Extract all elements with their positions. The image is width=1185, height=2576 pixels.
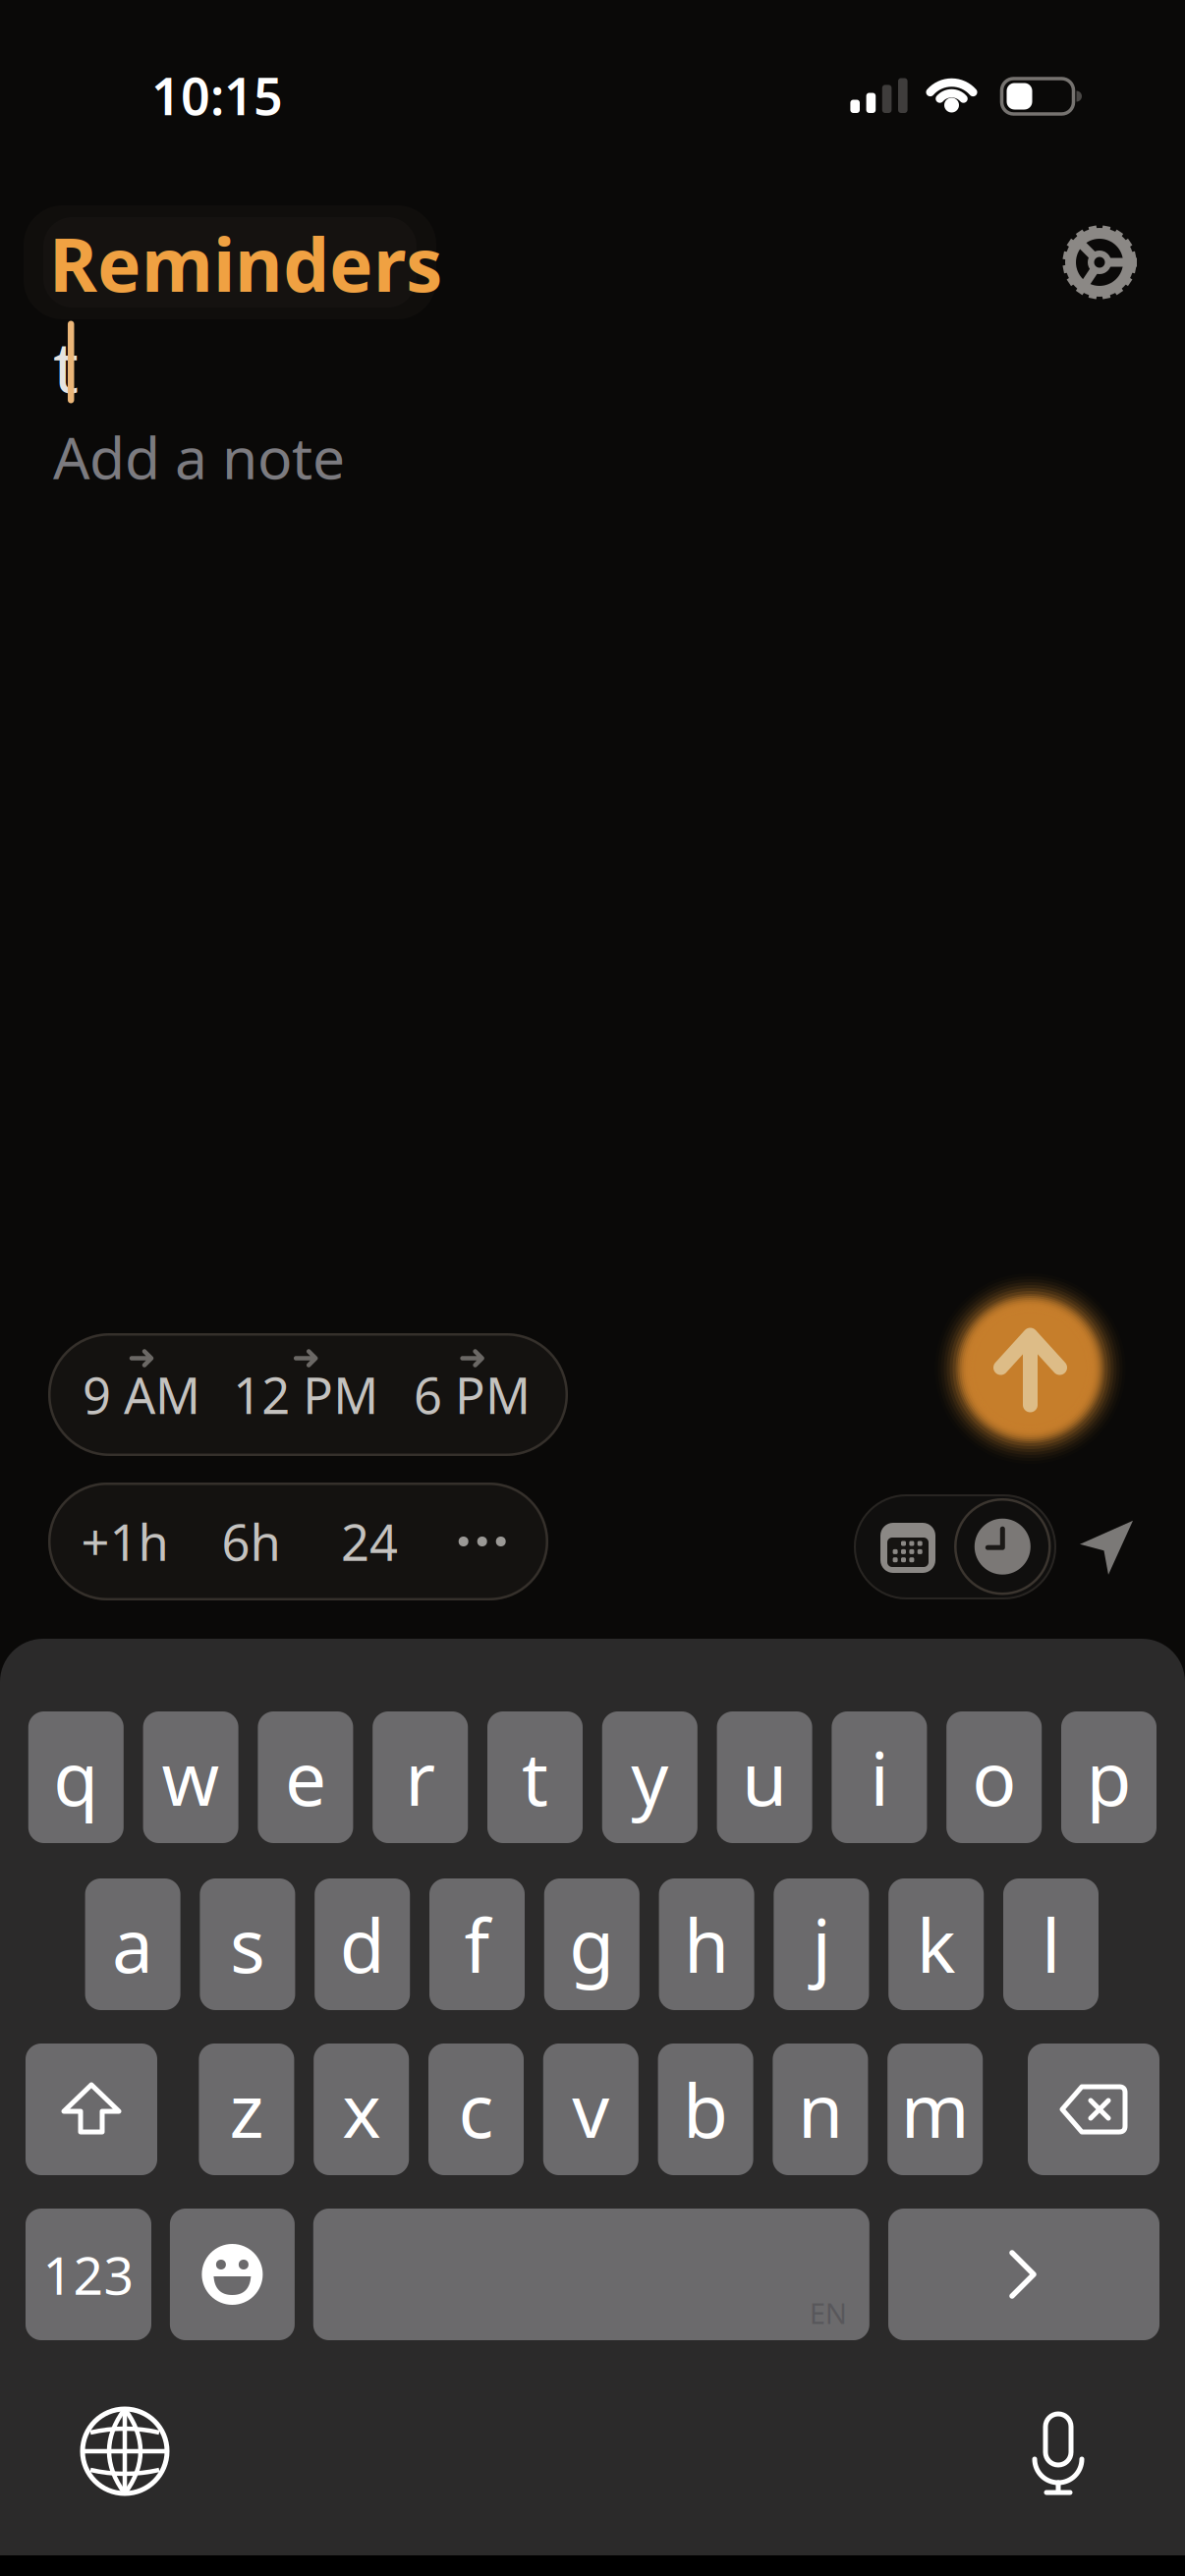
- button[interactable]: v: [543, 2044, 638, 2175]
- staticText: z: [229, 2061, 264, 2158]
- button[interactable]: 12 PM: [220, 1336, 392, 1448]
- staticText: t: [522, 1729, 548, 1826]
- staticText: 123: [43, 2240, 134, 2309]
- button[interactable]: t: [0, 321, 1185, 410]
- staticText: p: [1086, 1729, 1131, 1826]
- button[interactable]: p: [1061, 1711, 1157, 1843]
- staticText: t: [53, 319, 79, 412]
- staticText: r: [405, 1729, 435, 1826]
- button[interactable]: Delete: [1028, 2044, 1159, 2175]
- button[interactable]: m: [887, 2044, 983, 2175]
- staticText: 12 PM: [233, 1362, 378, 1428]
- staticText: e: [285, 1729, 326, 1826]
- staticText: m: [901, 2061, 970, 2158]
- button[interactable]: Emoji: [170, 2209, 295, 2340]
- button[interactable]: 9 AM: [63, 1336, 220, 1448]
- staticText: 6h: [221, 1508, 280, 1575]
- button[interactable]: i: [832, 1711, 927, 1843]
- button[interactable]: Return: [888, 2209, 1159, 2340]
- staticText: u: [742, 1729, 787, 1826]
- button[interactable]: Next keyboard: [81, 2407, 169, 2495]
- staticText: w: [162, 1729, 220, 1826]
- button[interactable]: Dictate: [1027, 2412, 1090, 2498]
- button[interactable]: g: [544, 1878, 639, 2010]
- button[interactable]: q: [28, 1711, 124, 1843]
- button[interactable]: w: [143, 1711, 238, 1843]
- staticText: y: [631, 1729, 668, 1826]
- button[interactable]: e: [258, 1711, 353, 1843]
- button[interactable]: Add a note: [0, 413, 1185, 501]
- button[interactable]: Save reminder: [932, 1270, 1129, 1467]
- button[interactable]: Settings: [1058, 221, 1141, 304]
- staticText: q: [53, 1729, 99, 1826]
- button[interactable]: 24: [320, 1492, 419, 1591]
- button[interactable]: k: [888, 1878, 984, 2010]
- staticText: 24: [341, 1508, 398, 1575]
- staticText: o: [972, 1729, 1016, 1826]
- button[interactable]: z: [199, 2044, 294, 2175]
- button[interactable]: +1h: [66, 1492, 184, 1591]
- staticText: Add a note: [53, 419, 345, 495]
- staticText: l: [1042, 1896, 1060, 1993]
- staticText: EN: [809, 2294, 847, 2332]
- staticText: x: [342, 2061, 380, 2158]
- button[interactable]: l: [1003, 1878, 1099, 2010]
- button[interactable]: Time: [953, 1497, 1052, 1596]
- button[interactable]: a: [85, 1878, 180, 2010]
- button[interactable]: b: [658, 2044, 753, 2175]
- button[interactable]: Space: [313, 2209, 869, 2340]
- button[interactable]: 6h: [202, 1492, 300, 1591]
- staticText: d: [340, 1896, 385, 1993]
- button[interactable]: n: [773, 2044, 868, 2175]
- button[interactable]: r: [373, 1711, 468, 1843]
- staticText: i: [870, 1729, 889, 1826]
- button[interactable]: u: [717, 1711, 812, 1843]
- staticText: b: [683, 2061, 728, 2158]
- button[interactable]: y: [602, 1711, 697, 1843]
- staticText: s: [230, 1896, 265, 1993]
- button[interactable]: Shift: [26, 2044, 157, 2175]
- staticText: +1h: [81, 1508, 169, 1575]
- button[interactable]: 6 PM: [394, 1336, 551, 1448]
- staticText: Reminders: [49, 215, 442, 312]
- button[interactable]: h: [659, 1878, 754, 2010]
- staticText: 10:15: [151, 61, 283, 129]
- button[interactable]: x: [314, 2044, 409, 2175]
- staticText: c: [458, 2061, 494, 2158]
- staticText: h: [684, 1896, 729, 1993]
- button[interactable]: j: [774, 1878, 869, 2010]
- staticText: j: [812, 1896, 831, 1993]
- staticText: 9 AM: [83, 1362, 200, 1428]
- button[interactable]: Date: [880, 1523, 935, 1573]
- button[interactable]: o: [946, 1711, 1042, 1843]
- button[interactable]: t: [487, 1711, 583, 1843]
- staticText: n: [798, 2061, 843, 2158]
- button[interactable]: f: [429, 1878, 525, 2010]
- button[interactable]: More options: [428, 1492, 536, 1591]
- staticText: v: [572, 2061, 609, 2158]
- staticText: k: [916, 1896, 956, 1993]
- button[interactable]: d: [315, 1878, 410, 2010]
- button[interactable]: c: [428, 2044, 524, 2175]
- staticText: g: [569, 1896, 614, 1993]
- button[interactable]: s: [200, 1878, 295, 2010]
- button[interactable]: 123: [26, 2209, 151, 2340]
- button[interactable]: Location: [1077, 1518, 1136, 1577]
- staticText: f: [464, 1896, 490, 1993]
- staticText: 6 PM: [414, 1362, 531, 1428]
- staticText: a: [112, 1896, 153, 1993]
